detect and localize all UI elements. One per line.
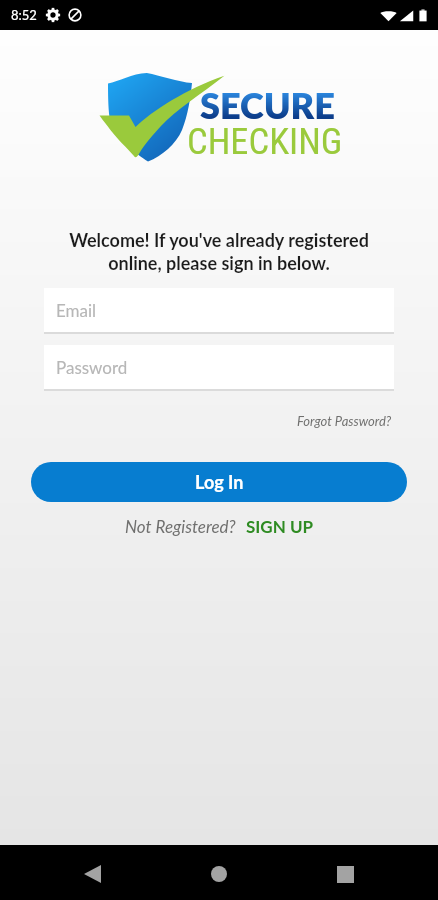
button[interactable]: Password — [44, 345, 394, 389]
button[interactable]: Forgot Password? — [295, 411, 394, 431]
staticText: Log In — [195, 471, 244, 493]
staticText: Email — [56, 300, 97, 320]
staticText: 8:52 — [11, 7, 37, 23]
button[interactable]: Recents — [321, 850, 369, 898]
button[interactable]: Home — [195, 850, 243, 898]
button[interactable]: Back — [68, 850, 116, 898]
button[interactable]: SIGN UP — [246, 516, 314, 536]
staticText: Not Registered? — [125, 516, 236, 536]
staticText: SECURE — [200, 83, 335, 126]
staticText: Welcome! If you've already registered on… — [69, 229, 369, 274]
button[interactable]: Email — [44, 288, 394, 332]
staticText: SIGN UP — [246, 516, 314, 536]
button[interactable]: Log In — [31, 462, 407, 502]
staticText: CHECKING — [187, 120, 343, 163]
staticText: Forgot Password? — [297, 413, 392, 429]
staticText: Password — [56, 357, 128, 377]
